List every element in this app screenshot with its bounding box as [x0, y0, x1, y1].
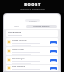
staticText: Gift Card $10	[12, 57, 25, 60]
button[interactable]: Claim	[50, 41, 57, 44]
staticText: Claim	[51, 60, 56, 62]
staticText: Claim	[51, 42, 56, 44]
button[interactable]: Coffee Voucher	[6, 38, 58, 46]
button[interactable]: Available Rewards	[26, 25, 57, 28]
staticText: Your Balance	[8, 31, 21, 34]
button[interactable]: Movie Ticket	[6, 47, 58, 55]
staticText: Movie Ticket	[12, 48, 24, 51]
staticText: BOOST	[24, 2, 41, 7]
staticText: Free Shipping	[12, 65, 26, 68]
button[interactable]: Claim	[50, 59, 57, 62]
staticText: Claim	[51, 51, 56, 53]
button[interactable]: Tasks	[6, 25, 26, 28]
button[interactable]: Claim	[50, 50, 57, 53]
button[interactable]: Your Balance	[6, 30, 58, 37]
staticText: Q Search	[29, 20, 37, 22]
staticText: Coffee Voucher	[12, 39, 27, 42]
staticText: Tasks	[14, 25, 19, 28]
staticText: Claim	[51, 68, 56, 70]
staticText: Available Rewards	[33, 25, 50, 28]
button[interactable]: Free Shipping	[6, 65, 58, 71]
button[interactable]: Search	[25, 19, 40, 22]
button[interactable]: Claim	[50, 67, 57, 70]
button[interactable]: Gift Card $10	[6, 56, 58, 64]
staticText: Rewards & Engagement	[20, 8, 45, 11]
